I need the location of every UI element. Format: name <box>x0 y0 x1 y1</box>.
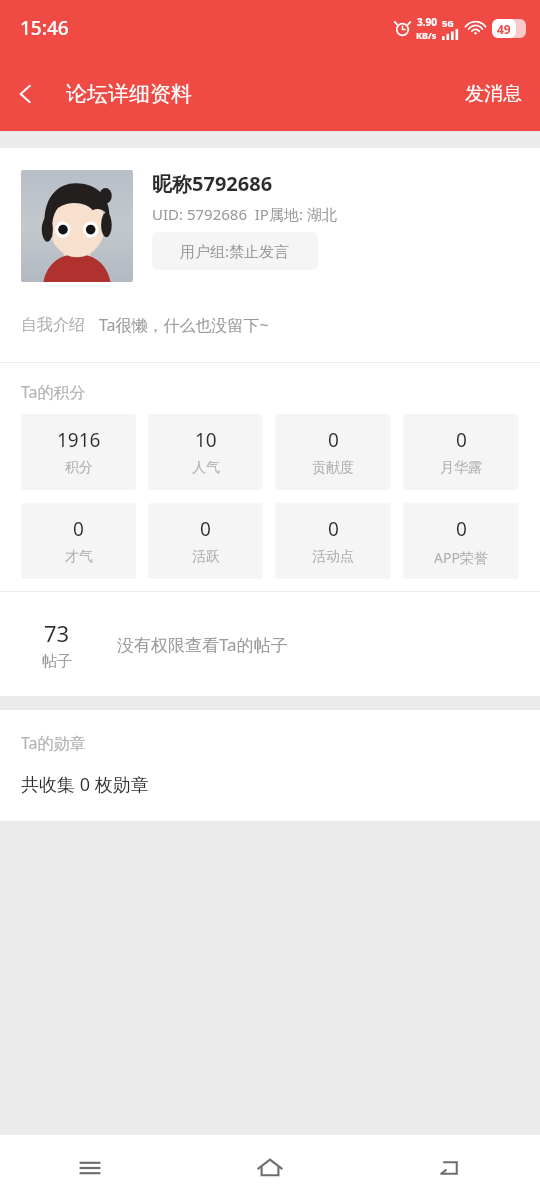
button[interactable]: 用户组:禁止发言 <box>152 232 318 270</box>
staticText: 10 <box>195 427 217 453</box>
button[interactable]: 0 <box>275 503 391 579</box>
staticText: 3.90 <box>417 15 437 29</box>
staticText: 73 <box>44 618 70 648</box>
staticText: Ta很懒，什么也没留下~ <box>99 314 269 336</box>
staticText: Ta的积分 <box>21 381 86 403</box>
staticText: 贡献度 <box>312 459 354 477</box>
button[interactable]: 0 <box>275 414 391 490</box>
staticText: 0 <box>328 427 339 453</box>
button[interactable]: Back <box>0 68 52 120</box>
staticText: 0 <box>456 516 467 542</box>
button[interactable]: Back <box>360 1135 540 1200</box>
button[interactable]: 0 <box>403 503 519 579</box>
staticText: 0 <box>328 516 339 542</box>
button[interactable]: 发消息 <box>447 68 540 120</box>
staticText: 才气 <box>65 548 93 566</box>
button[interactable]: 0 <box>403 414 519 490</box>
staticText: 0 <box>200 516 211 542</box>
staticText: 帖子 <box>42 652 72 671</box>
staticText: APP荣誉 <box>434 548 488 567</box>
staticText: 自我介绍 <box>21 315 85 335</box>
staticText: 0 <box>456 427 467 453</box>
staticText: 49 <box>497 21 511 37</box>
staticText: 5G <box>442 17 454 29</box>
staticText: 用户组:禁止发言 <box>180 241 290 261</box>
button[interactable]: Recent apps <box>0 1135 180 1200</box>
staticText: 发消息 <box>465 82 522 106</box>
staticText: 积分 <box>65 459 93 477</box>
button[interactable]: 10 <box>148 414 263 490</box>
button[interactable]: 0 <box>148 503 263 579</box>
button[interactable]: 73 <box>0 592 540 696</box>
staticText: 15:46 <box>20 15 69 41</box>
staticText: Ta的勋章 <box>21 732 86 754</box>
staticText: 人气 <box>192 459 220 477</box>
staticText: UID: 5792686 IP属地: 湖北 <box>152 204 337 224</box>
staticText: KB/s <box>416 29 437 41</box>
button[interactable]: Home <box>180 1135 360 1200</box>
staticText: 0 <box>73 516 84 542</box>
staticText: 论坛详细资料 <box>66 81 192 107</box>
staticText: 没有权限查看Ta的帖子 <box>117 633 288 656</box>
button[interactable]: 0 <box>21 503 136 579</box>
button[interactable]: 1916 <box>21 414 136 490</box>
staticText: 共收集 0 枚勋章 <box>21 772 149 797</box>
staticText: 1916 <box>57 427 101 453</box>
staticText: 昵称5792686 <box>152 170 273 197</box>
staticText: 活动点 <box>312 548 354 566</box>
staticText: 月华露 <box>440 459 482 477</box>
staticText: 活跃 <box>192 548 220 566</box>
